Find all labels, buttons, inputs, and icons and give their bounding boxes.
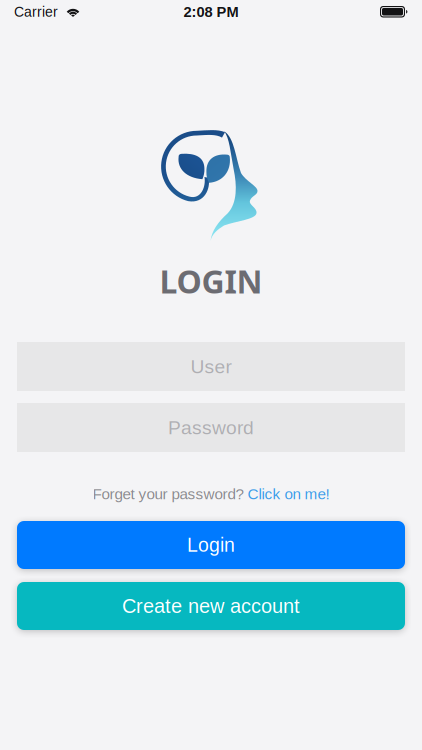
staticText: 2:08 PM — [183, 4, 238, 20]
staticText: Login — [187, 534, 235, 556]
staticText: Click on me! — [247, 485, 329, 503]
button[interactable]: Create new account — [17, 582, 405, 630]
button[interactable]: Login — [17, 521, 405, 569]
button[interactable]: Password — [17, 403, 405, 452]
staticText: Forget your password? — [92, 485, 247, 503]
staticText: Create new account — [122, 595, 300, 617]
staticText: Carrier — [14, 4, 58, 20]
staticText: User — [190, 356, 231, 377]
button[interactable]: User — [17, 342, 405, 391]
staticText: Password — [168, 417, 254, 438]
button[interactable]: Click on me! — [247, 485, 329, 503]
staticText: LOGIN — [159, 259, 262, 303]
